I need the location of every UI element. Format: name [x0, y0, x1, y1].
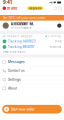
button[interactable]: Upgrade [27, 6, 43, 10]
staticText: Contact us [8, 69, 25, 73]
staticText: 9:41 [3, 0, 12, 5]
staticText: Alexander M. [11, 22, 34, 26]
staticText: IN TRANSIT ORDERS [3, 35, 33, 38]
staticText: About [8, 87, 17, 90]
button[interactable]: Notifications [58, 7, 61, 10]
staticText: Tomorrow [49, 45, 61, 49]
staticText: Show order history [3, 51, 26, 54]
button[interactable]: About [0, 84, 64, 93]
button[interactable]: QR code [57, 23, 61, 28]
staticText: Upgrade [29, 7, 42, 10]
button[interactable]: Search [54, 7, 57, 10]
staticText: ID 2847 Member [11, 26, 32, 29]
staticText: Tracking BK40117 [8, 45, 35, 49]
staticText: Messages [8, 60, 25, 64]
button[interactable]: Tracking BK40117 [0, 44, 64, 50]
button[interactable]: Contact us [0, 66, 64, 75]
staticText: brand [7, 6, 17, 11]
button[interactable]: Get 20% off your next order [0, 15, 64, 21]
button[interactable]: Home [3, 6, 17, 11]
staticText: Tracking AX91823 [8, 40, 36, 43]
button[interactable]: Start new order [2, 105, 62, 113]
staticText: Get 20% off your next order [3, 16, 46, 20]
staticText: Start new order [11, 107, 35, 111]
staticText: Settings [8, 78, 21, 81]
staticText: 2 ACTIVE [47, 35, 61, 38]
button[interactable]: Messages [0, 58, 64, 66]
button[interactable]: Tracking AX91823 [0, 39, 64, 44]
button[interactable]: Settings [0, 75, 64, 84]
button[interactable]: Show order history [0, 50, 64, 54]
staticText: Today [54, 40, 61, 43]
